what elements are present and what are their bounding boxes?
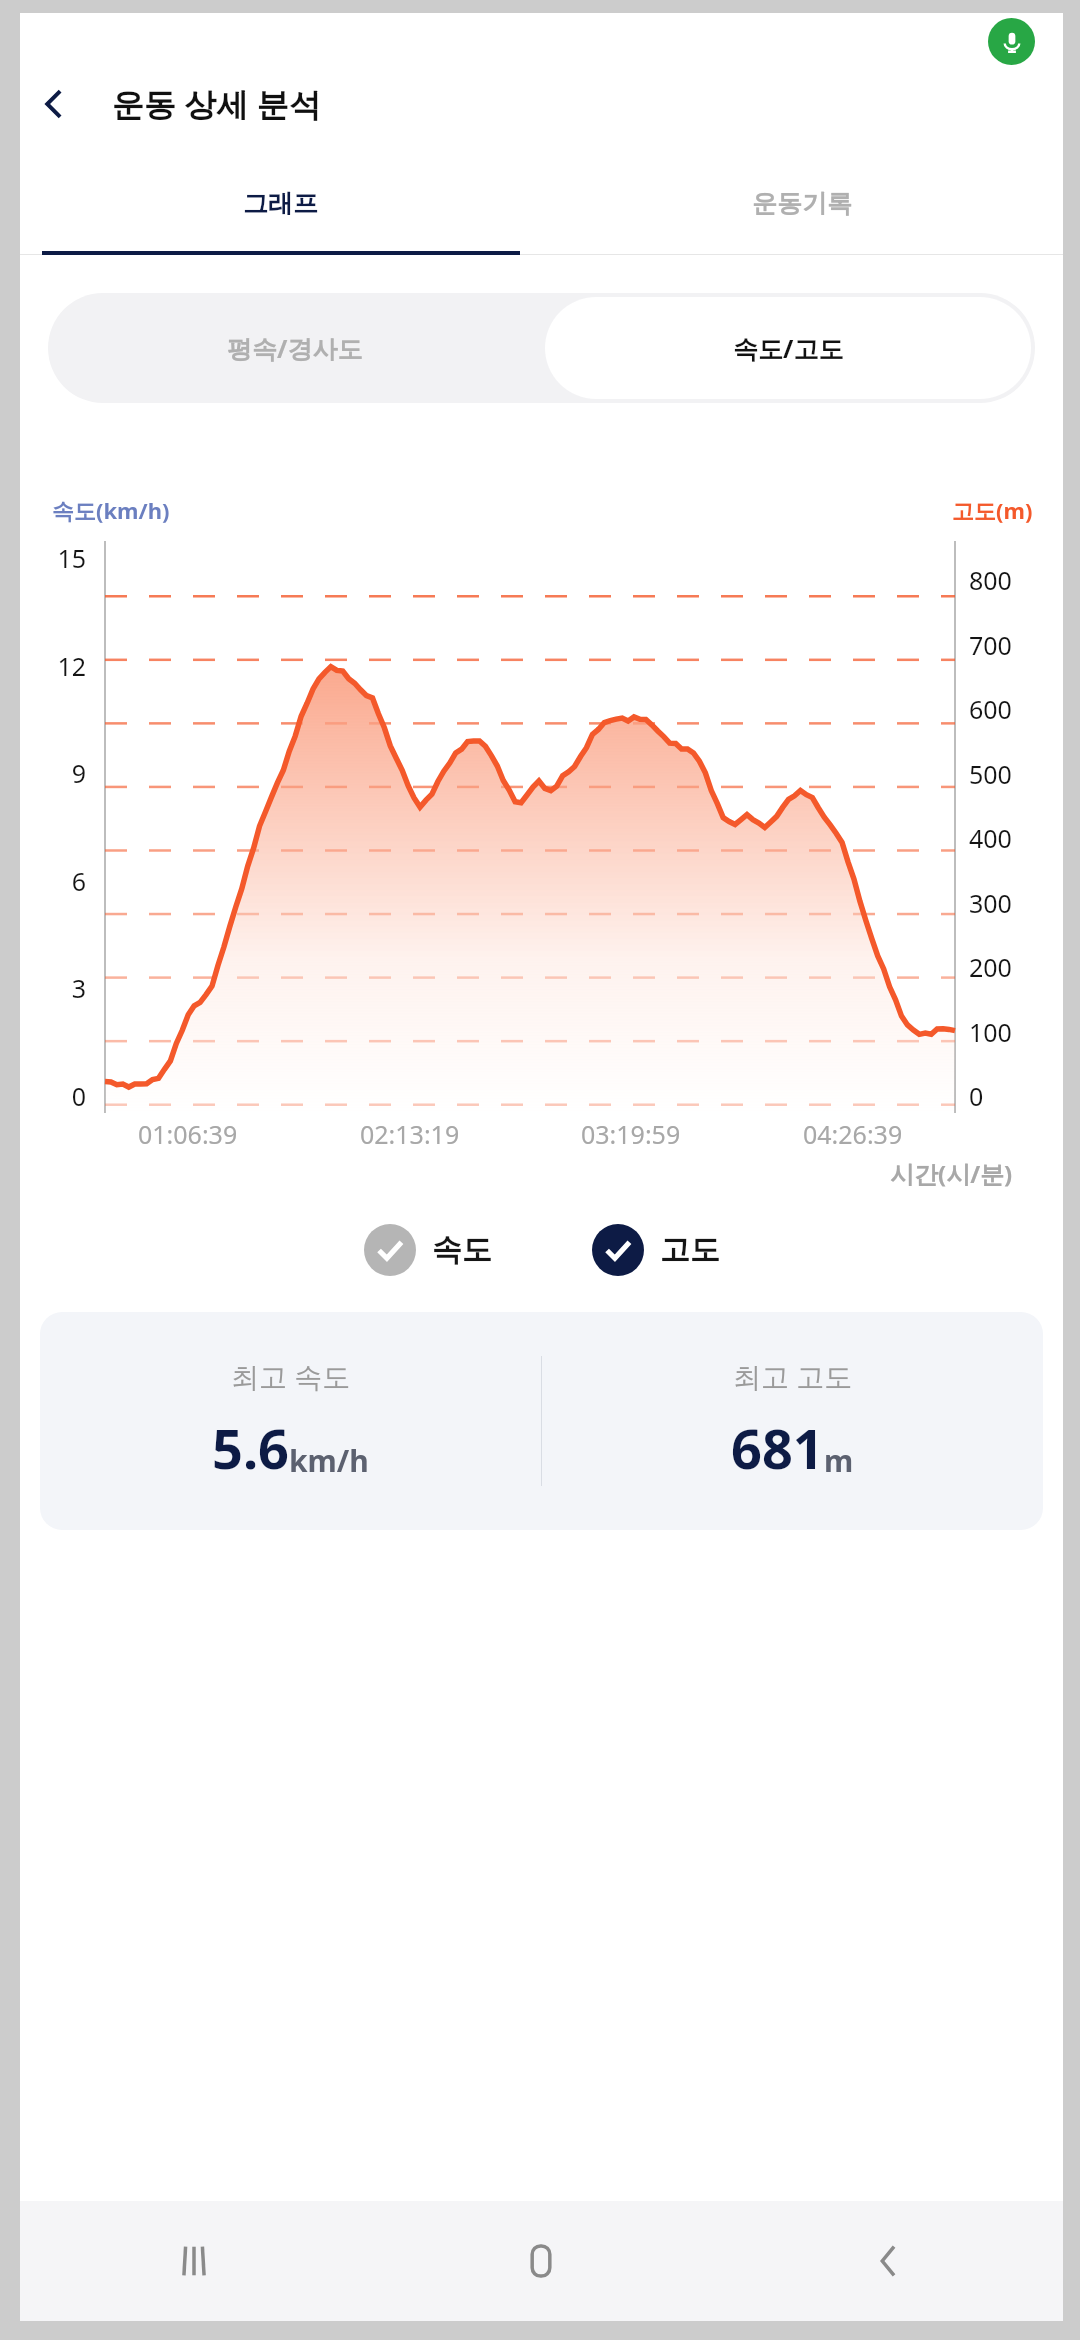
staticText: 15 <box>57 541 86 575</box>
staticText: 최고 속도 <box>231 1357 351 1395</box>
staticText: 운동기록 <box>752 188 852 219</box>
staticText: 200 <box>969 950 1012 984</box>
staticText: 운동 상세 분석 <box>112 82 321 126</box>
button[interactable]: 운동기록 <box>541 156 1063 251</box>
staticText: 5.6 <box>212 1411 289 1485</box>
staticText: 고도(m) <box>952 495 1033 525</box>
staticText: 6 <box>71 864 86 898</box>
staticText: 고도 <box>660 1231 720 1269</box>
staticText: 04:26:39 <box>803 1117 903 1151</box>
staticText: 800 <box>969 563 1012 597</box>
staticText: 평속/경사도 <box>227 331 363 365</box>
staticText: 9 <box>71 756 86 790</box>
staticText: 03:19:59 <box>581 1117 681 1151</box>
button[interactable]: Home <box>367 2201 715 2321</box>
button[interactable]: 그래프 <box>20 156 541 251</box>
staticText: 400 <box>969 821 1012 855</box>
staticText: 3 <box>71 971 86 1005</box>
staticText: 속도/고도 <box>733 331 844 365</box>
staticText: 속도 <box>432 1231 492 1269</box>
staticText: 속도(km/h) <box>52 495 170 525</box>
button[interactable]: 고도 <box>592 1224 720 1276</box>
button[interactable]: Recent apps <box>20 2201 367 2321</box>
staticText: m <box>824 1440 854 1481</box>
button[interactable]: Back <box>20 70 88 138</box>
staticText: km/h <box>289 1440 369 1481</box>
staticText: 그래프 <box>243 188 318 219</box>
staticText: 300 <box>969 886 1012 920</box>
staticText: 700 <box>969 628 1012 662</box>
button[interactable]: Back <box>715 2201 1063 2321</box>
button[interactable]: 속도/고도 <box>545 297 1031 399</box>
button[interactable]: 속도 <box>364 1224 492 1276</box>
staticText: 0 <box>969 1079 984 1113</box>
staticText: 100 <box>969 1015 1012 1049</box>
button[interactable]: Voice input <box>988 18 1035 65</box>
staticText: 600 <box>969 692 1012 726</box>
staticText: 500 <box>969 757 1012 791</box>
staticText: 12 <box>57 649 86 683</box>
staticText: 시간(시/분) <box>890 1157 1013 1190</box>
staticText: 02:13:19 <box>360 1117 460 1151</box>
staticText: 681 <box>731 1411 824 1485</box>
staticText: 0 <box>71 1079 86 1113</box>
staticText: 01:06:39 <box>138 1117 238 1151</box>
button[interactable]: 평속/경사도 <box>48 293 541 403</box>
staticText: 최고 고도 <box>733 1357 853 1395</box>
